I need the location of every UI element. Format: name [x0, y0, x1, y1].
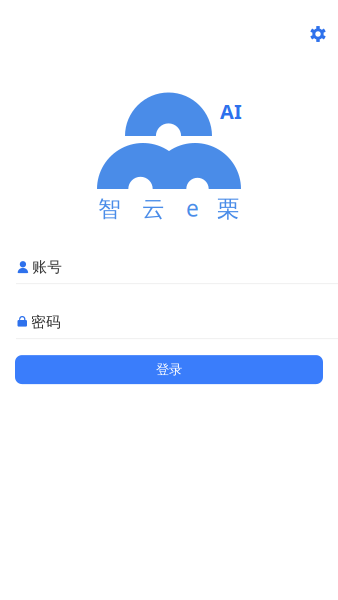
staticText: 智 云 e 栗 — [98, 193, 240, 223]
staticText: 登录 — [156, 361, 182, 378]
staticText: AI — [220, 98, 242, 125]
button[interactable]: 密码 — [0, 305, 338, 339]
staticText: 账号 — [32, 258, 62, 276]
button[interactable]: 登录 — [0, 355, 338, 384]
button[interactable]: 账号 — [0, 250, 338, 284]
button[interactable]: Settings — [300, 0, 338, 52]
staticText: 密码 — [31, 313, 61, 331]
